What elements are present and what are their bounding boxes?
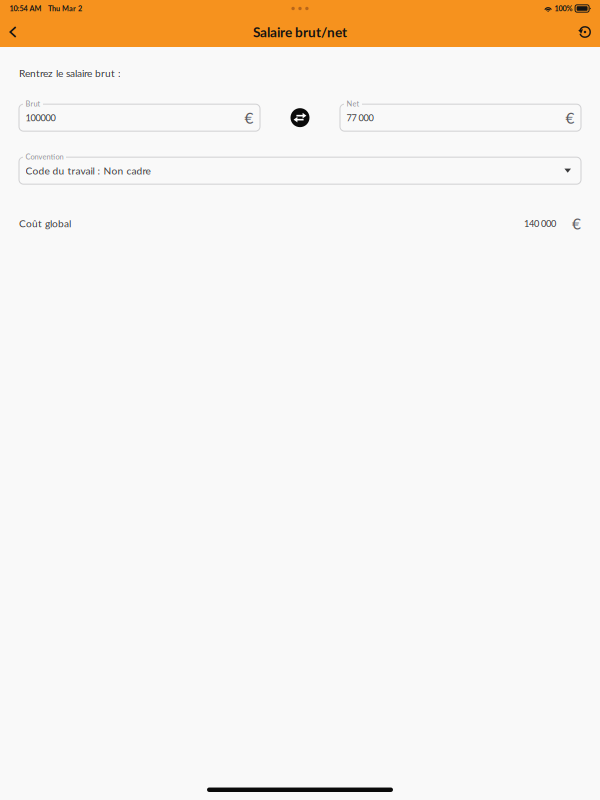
staticText: €: [572, 214, 581, 233]
staticText: 100000: [25, 112, 55, 123]
staticText: Coût global: [19, 217, 71, 230]
staticText: 77 000: [346, 112, 373, 123]
staticText: Salaire brut/net: [253, 24, 347, 40]
staticText: €: [244, 108, 253, 127]
button[interactable]: Back: [2, 17, 24, 47]
staticText: 140 000: [524, 218, 556, 229]
button[interactable]: Code du travail : Non cadre: [19, 152, 581, 184]
button[interactable]: History: [574, 17, 596, 47]
staticText: Net: [346, 99, 359, 108]
button[interactable]: Swap brut and net: [285, 99, 315, 131]
staticText: 10:54 AM: [9, 4, 41, 13]
staticText: €: [565, 108, 574, 127]
staticText: Thu Mar 2: [48, 4, 82, 13]
staticText: 100%: [555, 4, 573, 13]
staticText: Rentrez le salaire brut :: [19, 67, 121, 79]
staticText: Brut: [25, 99, 40, 108]
staticText: Convention: [25, 152, 63, 161]
staticText: Code du travail : Non cadre: [25, 165, 150, 177]
